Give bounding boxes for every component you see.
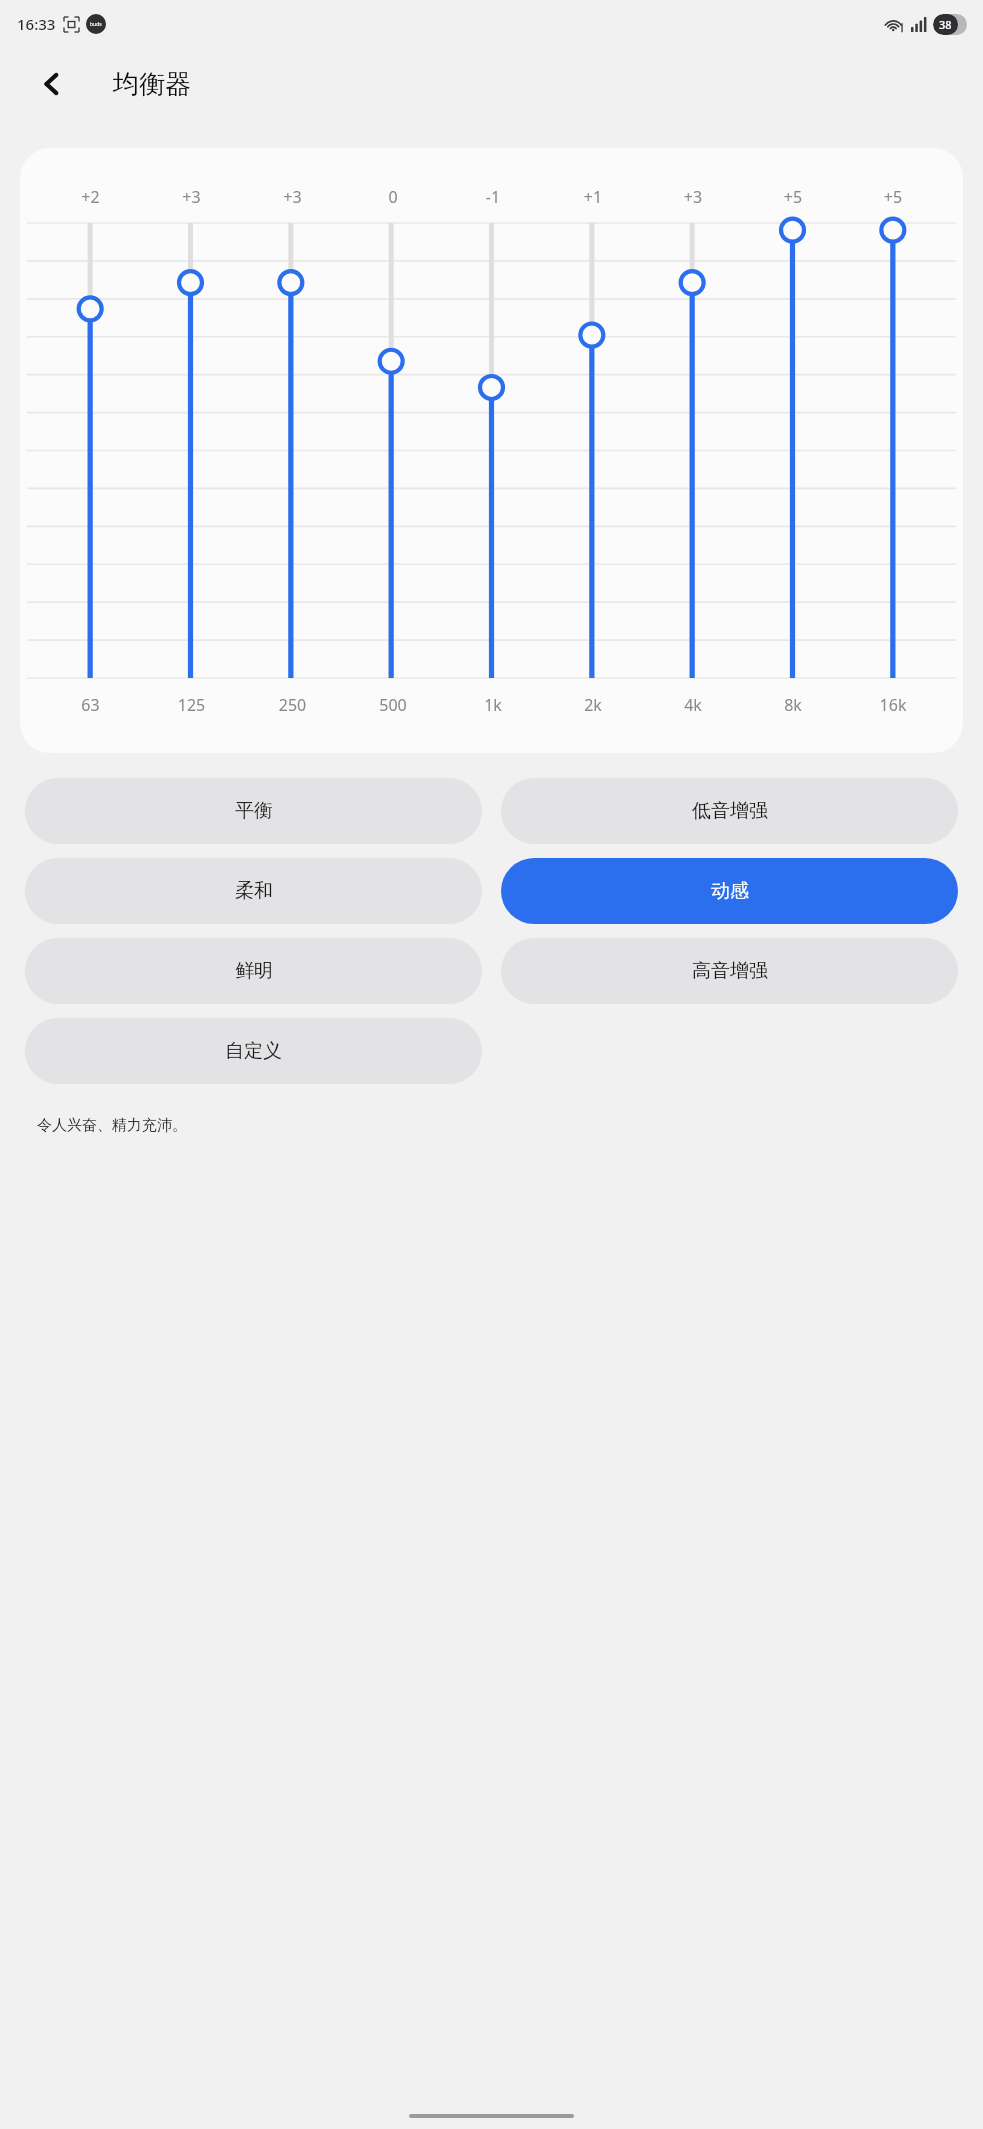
staticText: +3 bbox=[242, 186, 343, 208]
button[interactable]: 自定义 bbox=[25, 1018, 482, 1084]
staticText: +5 bbox=[743, 186, 843, 208]
staticText: 低音增强 bbox=[692, 799, 768, 823]
staticText: +3 bbox=[643, 186, 743, 208]
staticText: 自定义 bbox=[225, 1039, 282, 1063]
staticText: 2k bbox=[543, 694, 643, 716]
button[interactable]: 低音增强 bbox=[501, 778, 958, 844]
staticText: 63 bbox=[40, 694, 141, 716]
staticText: 16:33 bbox=[17, 14, 56, 34]
staticText: 高音增强 bbox=[692, 959, 768, 983]
staticText: +3 bbox=[141, 186, 242, 208]
button[interactable]: Back bbox=[26, 58, 78, 110]
staticText: buds bbox=[90, 21, 102, 28]
staticText: 均衡器 bbox=[113, 68, 191, 101]
staticText: 0 bbox=[343, 186, 443, 208]
staticText: 4k bbox=[643, 694, 743, 716]
button[interactable]: 平衡 bbox=[25, 778, 482, 844]
staticText: 250 bbox=[242, 694, 343, 716]
button[interactable]: 动感 bbox=[501, 858, 958, 924]
staticText: -1 bbox=[443, 186, 543, 208]
staticText: 1k bbox=[443, 694, 543, 716]
staticText: 平衡 bbox=[235, 799, 273, 823]
staticText: 16k bbox=[843, 694, 943, 716]
staticText: 38 bbox=[939, 17, 952, 32]
button[interactable]: 柔和 bbox=[25, 858, 482, 924]
staticText: +5 bbox=[843, 186, 943, 208]
staticText: +1 bbox=[543, 186, 643, 208]
button[interactable]: 高音增强 bbox=[501, 938, 958, 1004]
staticText: 500 bbox=[343, 694, 443, 716]
staticText: 125 bbox=[141, 694, 242, 716]
button[interactable]: 鲜明 bbox=[25, 938, 482, 1004]
staticText: 动感 bbox=[711, 879, 749, 903]
staticText: 柔和 bbox=[235, 879, 273, 903]
staticText: 8k bbox=[743, 694, 843, 716]
staticText: 鲜明 bbox=[235, 959, 273, 983]
staticText: +2 bbox=[40, 186, 141, 208]
staticText: 令人兴奋、精力充沛。 bbox=[37, 1116, 187, 1135]
